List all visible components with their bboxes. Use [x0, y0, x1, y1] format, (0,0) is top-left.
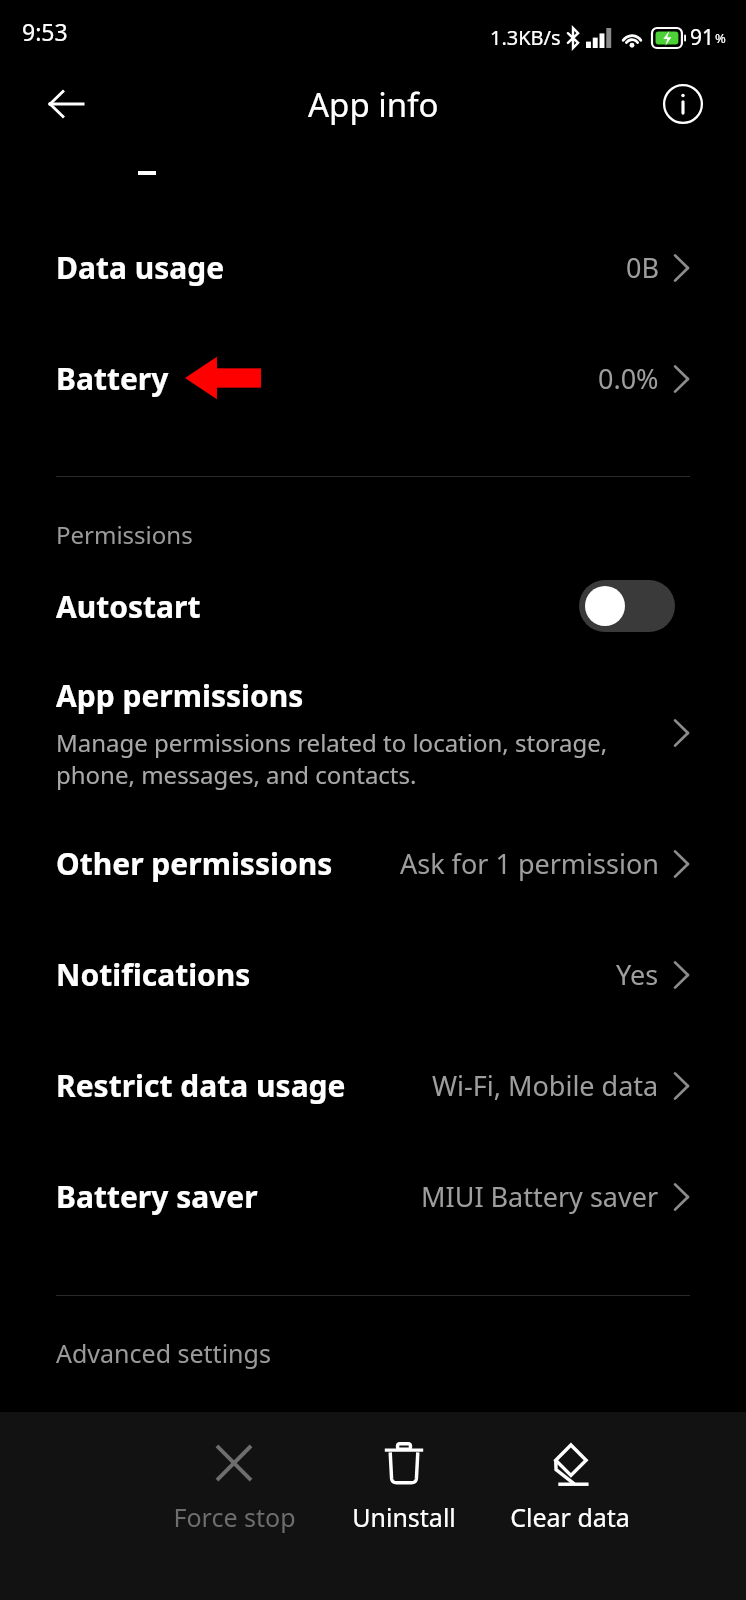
button[interactable]: Notifications	[0, 943, 746, 1005]
button[interactable]: Force stop	[166, 1434, 302, 1540]
staticText: Autostart	[56, 586, 201, 627]
staticText: Yes	[616, 956, 659, 993]
button[interactable]: Back	[38, 76, 94, 132]
button[interactable]: Clear data	[502, 1434, 638, 1540]
staticText: Notifications	[56, 954, 251, 995]
staticText: Other permissions	[56, 843, 333, 884]
staticText: Manage permissions related to location, …	[56, 726, 608, 791]
button[interactable]: Other permissions	[0, 832, 746, 894]
staticText: Battery	[56, 358, 169, 399]
staticText: 1.3KB/s	[490, 24, 561, 51]
staticText: App info	[308, 82, 439, 127]
staticText: Clear data	[510, 1500, 630, 1534]
staticText: 0.0%	[598, 360, 659, 397]
button[interactable]: Battery saver	[0, 1165, 746, 1227]
staticText: Wi-Fi, Mobile data	[432, 1067, 659, 1104]
button[interactable]: Data usage	[0, 236, 746, 298]
staticText: %	[715, 29, 726, 47]
staticText: Ask for 1 permission	[400, 845, 659, 882]
staticText: 91	[690, 23, 715, 52]
button[interactable]: Restrict data usage	[0, 1054, 746, 1116]
staticText: Force stop	[173, 1500, 296, 1534]
staticText: Uninstall	[352, 1500, 456, 1534]
staticText: Advanced settings	[56, 1336, 271, 1370]
button[interactable]: Uninstall	[336, 1434, 472, 1540]
staticText: 0B	[626, 249, 659, 286]
staticText: Permissions	[56, 518, 193, 551]
staticText: Battery saver	[56, 1176, 258, 1217]
button[interactable]: Autostart toggle	[579, 580, 675, 632]
staticText: 9:53	[22, 16, 68, 47]
button[interactable]: About app	[656, 77, 710, 131]
staticText: MIUI Battery saver	[421, 1178, 659, 1215]
button[interactable]: App permissions	[0, 668, 746, 798]
staticText: Restrict data usage	[56, 1065, 346, 1106]
button[interactable]: Autostart	[0, 560, 746, 652]
staticText: Data usage	[56, 247, 225, 288]
staticText: App permissions	[56, 675, 304, 716]
button[interactable]: Battery	[0, 347, 746, 409]
